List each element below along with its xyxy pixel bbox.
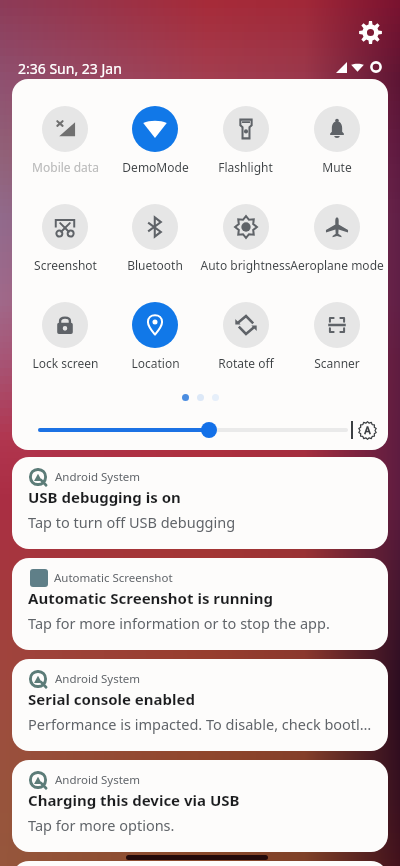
staticText: Location bbox=[131, 355, 180, 371]
button[interactable]: Android System bbox=[12, 861, 388, 866]
staticText: Scanner bbox=[314, 355, 360, 371]
staticText: Automatic Screenshot bbox=[54, 570, 173, 586]
button[interactable]: Automatic Screenshot bbox=[12, 558, 388, 650]
staticText: USB debugging is on bbox=[28, 487, 181, 507]
button[interactable]: Lock screen bbox=[20, 302, 110, 371]
staticText: Aeroplane mode bbox=[290, 257, 384, 273]
button[interactable]: Scanner bbox=[291, 302, 382, 371]
staticText: Rotate off bbox=[218, 355, 274, 371]
button[interactable]: Android System bbox=[12, 659, 388, 751]
button[interactable]: Location bbox=[110, 302, 200, 371]
staticText: Bluetooth bbox=[127, 257, 183, 273]
staticText: Android System bbox=[55, 469, 141, 485]
button[interactable]: Bluetooth bbox=[110, 204, 200, 273]
button[interactable]: Screenshot bbox=[20, 204, 110, 273]
staticText: Automatic Screenshot is running bbox=[28, 588, 273, 608]
button[interactable]: Settings bbox=[354, 16, 387, 49]
staticText: Tap for more information or to stop the … bbox=[28, 613, 330, 633]
button[interactable]: Android System bbox=[12, 760, 388, 852]
button[interactable]: DemoMode bbox=[110, 106, 200, 175]
staticText: Screenshot bbox=[34, 257, 97, 273]
staticText: Tap to turn off USB debugging bbox=[28, 512, 236, 532]
staticText: Mobile data bbox=[32, 159, 99, 175]
staticText: DemoMode bbox=[122, 159, 189, 175]
button[interactable]: Mute bbox=[291, 106, 382, 175]
staticText: Android System bbox=[55, 671, 141, 687]
staticText: Android System bbox=[55, 772, 141, 788]
staticText: Charging this device via USB bbox=[28, 790, 240, 810]
button[interactable]: Android System bbox=[12, 457, 388, 549]
button[interactable]: Mobile data bbox=[20, 106, 110, 175]
staticText: Mute bbox=[322, 159, 352, 175]
button[interactable]: Rotate off bbox=[200, 302, 291, 371]
button[interactable]: Auto brightness bbox=[200, 204, 291, 273]
staticText: 2:36 Sun, 23 Jan bbox=[18, 59, 122, 78]
button[interactable]: Aeroplane mode bbox=[291, 204, 382, 273]
staticText: Auto brightness bbox=[200, 257, 291, 273]
staticText: Tap for more options. bbox=[28, 815, 175, 835]
staticText: Flashlight bbox=[218, 159, 273, 175]
button[interactable]: Flashlight bbox=[200, 106, 291, 175]
staticText: Performance is impacted. To disable, che… bbox=[28, 714, 372, 734]
staticText: Lock screen bbox=[32, 355, 99, 371]
staticText: Serial console enabled bbox=[28, 689, 195, 709]
